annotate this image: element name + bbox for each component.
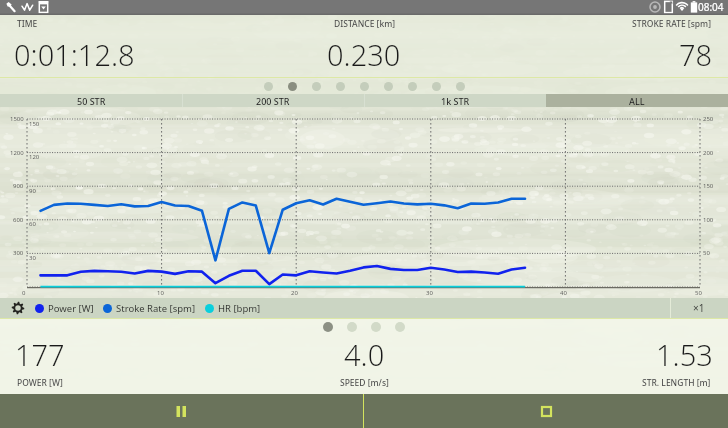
staticText: 90 — [29, 187, 36, 195]
staticText: 50 — [703, 249, 710, 257]
staticText: ALL — [629, 95, 645, 107]
staticText: SPEED [m/s] — [340, 377, 389, 389]
button[interactable]: 50 STR — [0, 94, 182, 107]
staticText: 1.53 — [656, 335, 713, 374]
staticText: 150 — [29, 120, 40, 128]
staticText: 250 — [703, 115, 714, 123]
staticText: Power [W] — [48, 302, 94, 315]
staticText: 78 — [679, 35, 713, 74]
button[interactable]: Settings — [9, 299, 27, 317]
button[interactable] — [340, 322, 364, 332]
staticText: 50 STR — [77, 95, 106, 107]
staticText: 0 — [22, 289, 26, 297]
staticText: ×1 — [693, 301, 705, 315]
button[interactable] — [376, 82, 400, 91]
staticText: 60 — [29, 220, 36, 228]
button[interactable]: 1k STR — [364, 94, 546, 107]
staticText: 200 STR — [256, 95, 290, 107]
staticText: 08:04 — [698, 0, 724, 14]
button[interactable]: Power [W] — [35, 298, 94, 318]
staticText: 20 — [291, 289, 298, 297]
button[interactable]: HR [bpm] — [205, 298, 261, 318]
staticText: 30 — [29, 254, 36, 262]
button[interactable] — [316, 322, 340, 332]
staticText: Stroke Rate [spm] — [116, 302, 196, 315]
staticText: STROKE RATE [spm] — [632, 18, 711, 30]
button[interactable] — [400, 82, 424, 91]
button[interactable] — [352, 82, 376, 91]
staticText: 4.0 — [344, 335, 385, 374]
button[interactable]: Stroke Rate [spm] — [103, 298, 196, 318]
button[interactable]: Pause — [0, 394, 363, 428]
staticText: STR. LENGTH [m] — [642, 377, 711, 389]
staticText: 100 — [703, 216, 714, 224]
staticText: POWER [W] — [17, 377, 63, 389]
staticText: 900 — [13, 182, 24, 190]
button[interactable] — [448, 82, 472, 91]
staticText: 50 — [695, 289, 702, 297]
staticText: HR [bpm] — [218, 302, 261, 315]
button[interactable] — [424, 82, 448, 91]
staticText: 1k STR — [441, 95, 470, 107]
staticText: 40 — [560, 289, 567, 297]
staticText: 177 — [15, 335, 65, 374]
staticText: 300 — [13, 249, 24, 257]
button[interactable]: 200 STR — [182, 94, 364, 107]
button[interactable]: ×1 — [670, 298, 728, 318]
staticText: 200 — [703, 149, 714, 157]
button[interactable] — [364, 322, 388, 332]
staticText: TIME — [17, 18, 38, 30]
button[interactable] — [280, 82, 304, 91]
button[interactable] — [256, 82, 280, 91]
staticText: DISTANCE [km] — [334, 18, 395, 30]
staticText: 1200 — [10, 149, 24, 157]
staticText: 30 — [426, 289, 433, 297]
staticText: 120 — [29, 153, 40, 161]
button[interactable] — [304, 82, 328, 91]
staticText: 1500 — [10, 115, 24, 123]
staticText: 0:01:12.8 — [14, 35, 135, 74]
staticText: 600 — [13, 216, 24, 224]
button[interactable] — [328, 82, 352, 91]
button[interactable]: ALL — [546, 94, 728, 107]
staticText: 10 — [157, 289, 164, 297]
button[interactable] — [388, 322, 412, 332]
staticText: 0.230 — [327, 35, 401, 74]
staticText: 150 — [703, 182, 714, 190]
button[interactable]: Stop — [364, 394, 728, 428]
